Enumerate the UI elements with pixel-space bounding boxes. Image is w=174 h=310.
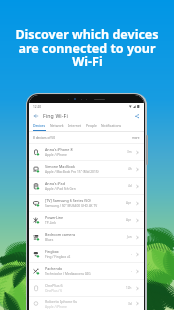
staticText: 3m	[127, 150, 132, 154]
button[interactable]: [TV] Samsung 6 Series (50)	[29, 195, 144, 211]
staticText: Wi-Fi	[72, 53, 103, 70]
staticText: Fingbox	[45, 249, 59, 254]
button[interactable]: Network	[48, 121, 66, 130]
staticText: Apple / iPhone	[45, 305, 67, 309]
button[interactable]: Share	[133, 112, 141, 120]
staticText: 12:20	[33, 105, 42, 109]
staticText: 4d	[128, 184, 132, 188]
button[interactable]: PowerLine	[29, 212, 144, 228]
staticText: more	[132, 136, 140, 140]
staticText: 4h	[128, 167, 132, 171]
button[interactable]: Notifications	[99, 121, 124, 130]
staticText: OnePlus / 6	[45, 289, 63, 293]
staticText: Apple / MacBook Pro 15" (Mid 2015)	[45, 170, 99, 174]
staticText: PowerLine	[45, 215, 64, 220]
staticText: Bedroom camera	[45, 232, 75, 237]
button[interactable]: Fingbox	[29, 246, 144, 262]
staticText: Jun	[127, 235, 132, 239]
staticText: Fing Wi-Fi	[43, 112, 68, 119]
staticText: Samsung / 50" MU6400 UHD 4K TV	[45, 204, 98, 208]
staticText: Fing / Fingbox v2	[45, 255, 71, 259]
button[interactable]: Devices	[31, 121, 48, 131]
button[interactable]: Anna's iPad	[29, 178, 144, 194]
staticText: Apple / iPhone	[45, 153, 67, 157]
staticText: Devices	[33, 123, 46, 128]
staticText: 12h	[126, 286, 132, 290]
staticText: Notifications	[101, 123, 122, 128]
staticText: -	[131, 252, 132, 256]
staticText: TP-Link	[45, 221, 56, 225]
button[interactable]: Anna's iPhone 8	[29, 144, 144, 160]
staticText: Blues	[45, 238, 54, 242]
staticText: [TV] Samsung 6 Series (50)	[45, 198, 91, 203]
button[interactable]: Internet	[66, 121, 84, 130]
button[interactable]: Roberto Iphone 6s	[29, 297, 144, 310]
staticText: Network	[50, 123, 64, 128]
button[interactable]: Back	[32, 112, 40, 120]
staticText: 3d	[128, 302, 132, 306]
staticText: Discover which devices	[15, 26, 159, 43]
button[interactable]: People	[84, 121, 99, 130]
staticText: -	[131, 269, 132, 273]
staticText: Roberto Iphone 6s	[45, 299, 78, 304]
staticText: Anna's iPad	[45, 181, 65, 186]
button[interactable]: Pachendo	[29, 263, 144, 279]
staticText: are connected to your	[18, 40, 156, 57]
staticText: 8 devices of 50	[33, 136, 55, 140]
staticText: Pachendo	[45, 266, 63, 271]
staticText: Internet	[68, 123, 82, 128]
staticText: People	[86, 123, 97, 128]
button[interactable]: OnePlus 6	[29, 280, 144, 296]
staticText: Technicolor / Mediaaccess GIG	[45, 272, 91, 276]
staticText: Apr	[126, 201, 132, 205]
staticText: Simone MacBook	[45, 164, 75, 169]
button[interactable]: Bedroom camera	[29, 229, 144, 245]
staticText: Apr	[126, 218, 132, 222]
staticText: Apple / iPad 5th Gen	[45, 187, 76, 191]
staticText: Anna's iPhone 8	[45, 147, 73, 152]
staticText: OnePlus 6	[45, 283, 63, 288]
button[interactable]: Simone MacBook	[29, 161, 144, 177]
